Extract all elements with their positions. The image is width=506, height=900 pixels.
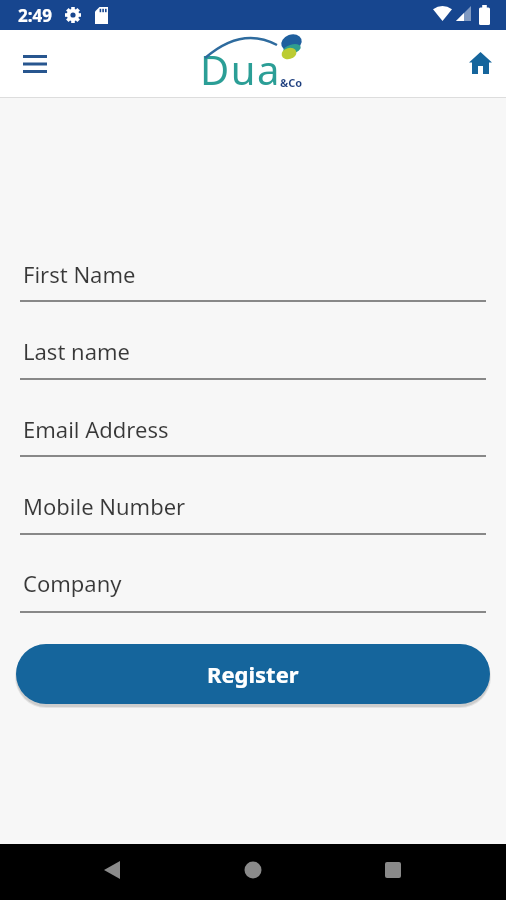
button[interactable] (12, 44, 58, 84)
staticText: Email Address (23, 414, 169, 444)
staticText: Company (23, 568, 122, 598)
staticText: Last name (23, 336, 130, 366)
button[interactable]: Company (20, 566, 486, 613)
staticText: Dua (200, 42, 281, 96)
button[interactable]: Last name (20, 334, 486, 380)
staticText: Register (207, 659, 299, 689)
button[interactable] (458, 41, 502, 85)
button[interactable]: Email Address (20, 412, 486, 457)
staticText: &Co (280, 75, 303, 90)
button[interactable] (231, 848, 275, 892)
button[interactable]: First Name (20, 257, 486, 302)
button[interactable]: Register (16, 644, 490, 704)
button[interactable] (371, 848, 415, 892)
staticText: Mobile Number (23, 491, 186, 521)
staticText: 2:49 (18, 4, 52, 27)
button[interactable] (90, 848, 134, 892)
staticText: First Name (23, 259, 136, 289)
button[interactable]: Mobile Number (20, 489, 486, 535)
